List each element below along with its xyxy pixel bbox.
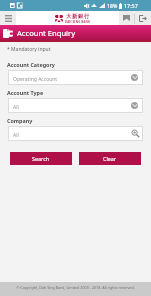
button[interactable]: Search: [10, 152, 72, 165]
staticText: Search: [32, 155, 50, 162]
staticText: Company: [7, 117, 33, 124]
staticText: Account Enquiry: [17, 28, 76, 38]
button[interactable]: Clear: [79, 152, 141, 165]
staticText: Operating Account: [13, 76, 58, 83]
button[interactable]: Bookmarks: [119, 11, 134, 25]
staticText: 大新銀行: [66, 13, 90, 20]
staticText: DAH SING BANK: [65, 20, 91, 24]
staticText: All: [13, 132, 19, 139]
button[interactable]: Operating Account: [8, 70, 143, 85]
staticText: * Mandatory input: [7, 46, 51, 53]
button[interactable]: All: [8, 126, 143, 141]
staticText: All: [13, 104, 19, 111]
staticText: Account Category: [7, 61, 55, 68]
button[interactable]: Logout: [135, 11, 151, 25]
other: Search company: [131, 129, 140, 138]
staticText: Clear: [103, 155, 117, 162]
staticText: 18%: [107, 2, 118, 9]
button[interactable]: Menu: [0, 11, 16, 25]
button[interactable]: All: [8, 98, 143, 113]
staticText: Account Type: [7, 89, 44, 96]
staticText: 17:57: [124, 2, 138, 9]
staticText: © Copyright, Dah Sing Bank, Limited 2000…: [16, 285, 135, 290]
